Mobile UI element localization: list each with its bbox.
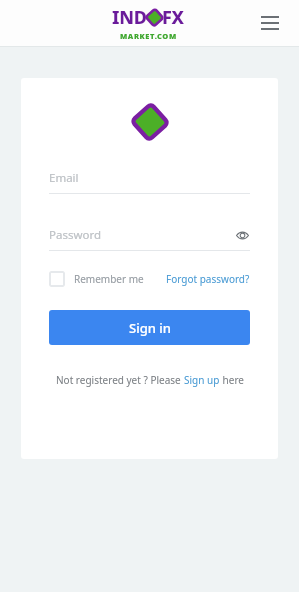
staticText: Forgot password?: [166, 272, 250, 286]
staticText: here: [220, 373, 244, 387]
button[interactable]: Open menu: [257, 10, 283, 36]
staticText: FX: [162, 5, 184, 30]
button[interactable]: Show password: [234, 227, 250, 243]
staticText: IND: [112, 5, 147, 30]
button[interactable]: Remember me: [49, 271, 144, 287]
button[interactable]: Password: [49, 227, 250, 251]
staticText: Email: [49, 170, 250, 186]
staticText: Not registered yet ? Please: [56, 373, 184, 387]
staticText: Sign up: [184, 373, 220, 387]
staticText: MARKET.COM: [120, 31, 177, 41]
staticText: Sign in: [129, 319, 171, 337]
staticText: Password: [49, 227, 234, 243]
button[interactable]: Sign in: [49, 310, 250, 345]
button[interactable]: Forgot password?: [166, 272, 250, 286]
button[interactable]: Sign up: [184, 373, 220, 387]
staticText: Remember me: [74, 272, 144, 286]
button[interactable]: Email: [49, 170, 250, 194]
